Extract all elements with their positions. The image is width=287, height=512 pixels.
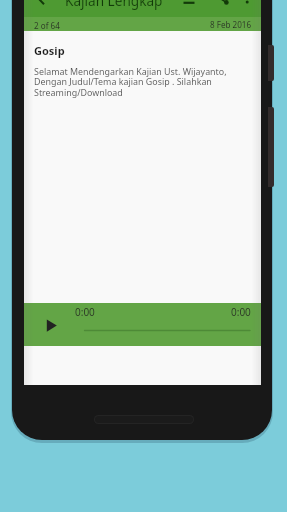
staticText: 2 of 64: [34, 20, 60, 31]
button[interactable]: Play: [40, 313, 64, 337]
staticText: Kajian Lengkap: [65, 0, 163, 10]
staticText: 8 Feb 2016: [210, 19, 252, 30]
staticText: Gosip: [34, 43, 65, 58]
button[interactable]: Download: [178, 0, 200, 8]
staticText: 0:00: [75, 305, 95, 319]
button[interactable]: Share: [210, 0, 232, 6]
staticText: Selamat Mendengarkan Kajian Ust. Wijayan…: [34, 65, 240, 99]
button[interactable]: More options: [236, 0, 258, 5]
staticText: 0:00: [231, 305, 251, 319]
button[interactable]: Back: [32, 0, 56, 7]
